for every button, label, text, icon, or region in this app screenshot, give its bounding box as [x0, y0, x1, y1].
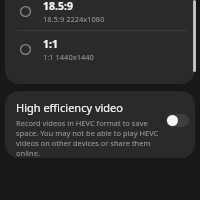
staticText: 1:1	[43, 37, 58, 51]
staticText: Record videos in HEVC format to save spa…	[16, 118, 162, 158]
button[interactable]: 18.5:9	[5, 0, 195, 30]
button[interactable]: High efficiency video	[5, 91, 195, 158]
staticText: 18.5:9 2224x1080	[43, 14, 105, 24]
button[interactable]: 1:1	[5, 31, 195, 68]
staticText: 18.5:9	[43, 0, 73, 13]
staticText: High efficiency video	[16, 100, 123, 115]
staticText: 1:1 1440x1440	[43, 52, 94, 62]
button[interactable]: High efficiency video toggle	[166, 114, 189, 127]
